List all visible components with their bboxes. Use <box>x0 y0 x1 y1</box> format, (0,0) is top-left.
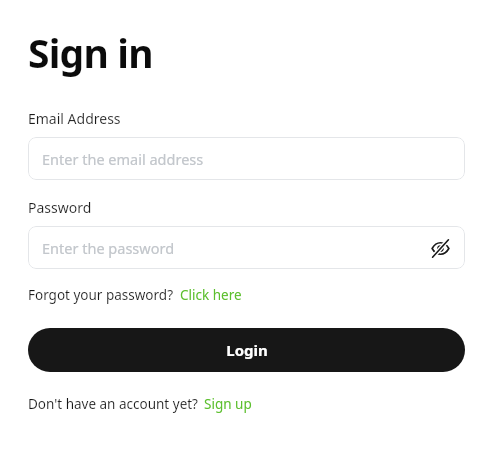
staticText: Password <box>28 198 92 217</box>
button[interactable]: Click here <box>180 286 242 304</box>
staticText: Login <box>226 340 268 360</box>
staticText: Enter the email address <box>42 149 204 169</box>
staticText: Sign in <box>28 26 153 79</box>
button[interactable]: Sign up <box>204 395 252 413</box>
staticText: Click here <box>180 286 242 304</box>
button[interactable]: Enter the email address <box>28 137 465 180</box>
button[interactable]: Show password <box>427 235 453 261</box>
staticText: Don't have an account yet? <box>28 395 198 413</box>
button[interactable]: Enter the password <box>28 226 465 269</box>
staticText: Forgot your password? <box>28 286 174 304</box>
staticText: Sign up <box>204 395 252 413</box>
button[interactable]: Login <box>28 328 465 372</box>
staticText: Email Address <box>28 109 121 128</box>
staticText: Enter the password <box>42 238 175 258</box>
